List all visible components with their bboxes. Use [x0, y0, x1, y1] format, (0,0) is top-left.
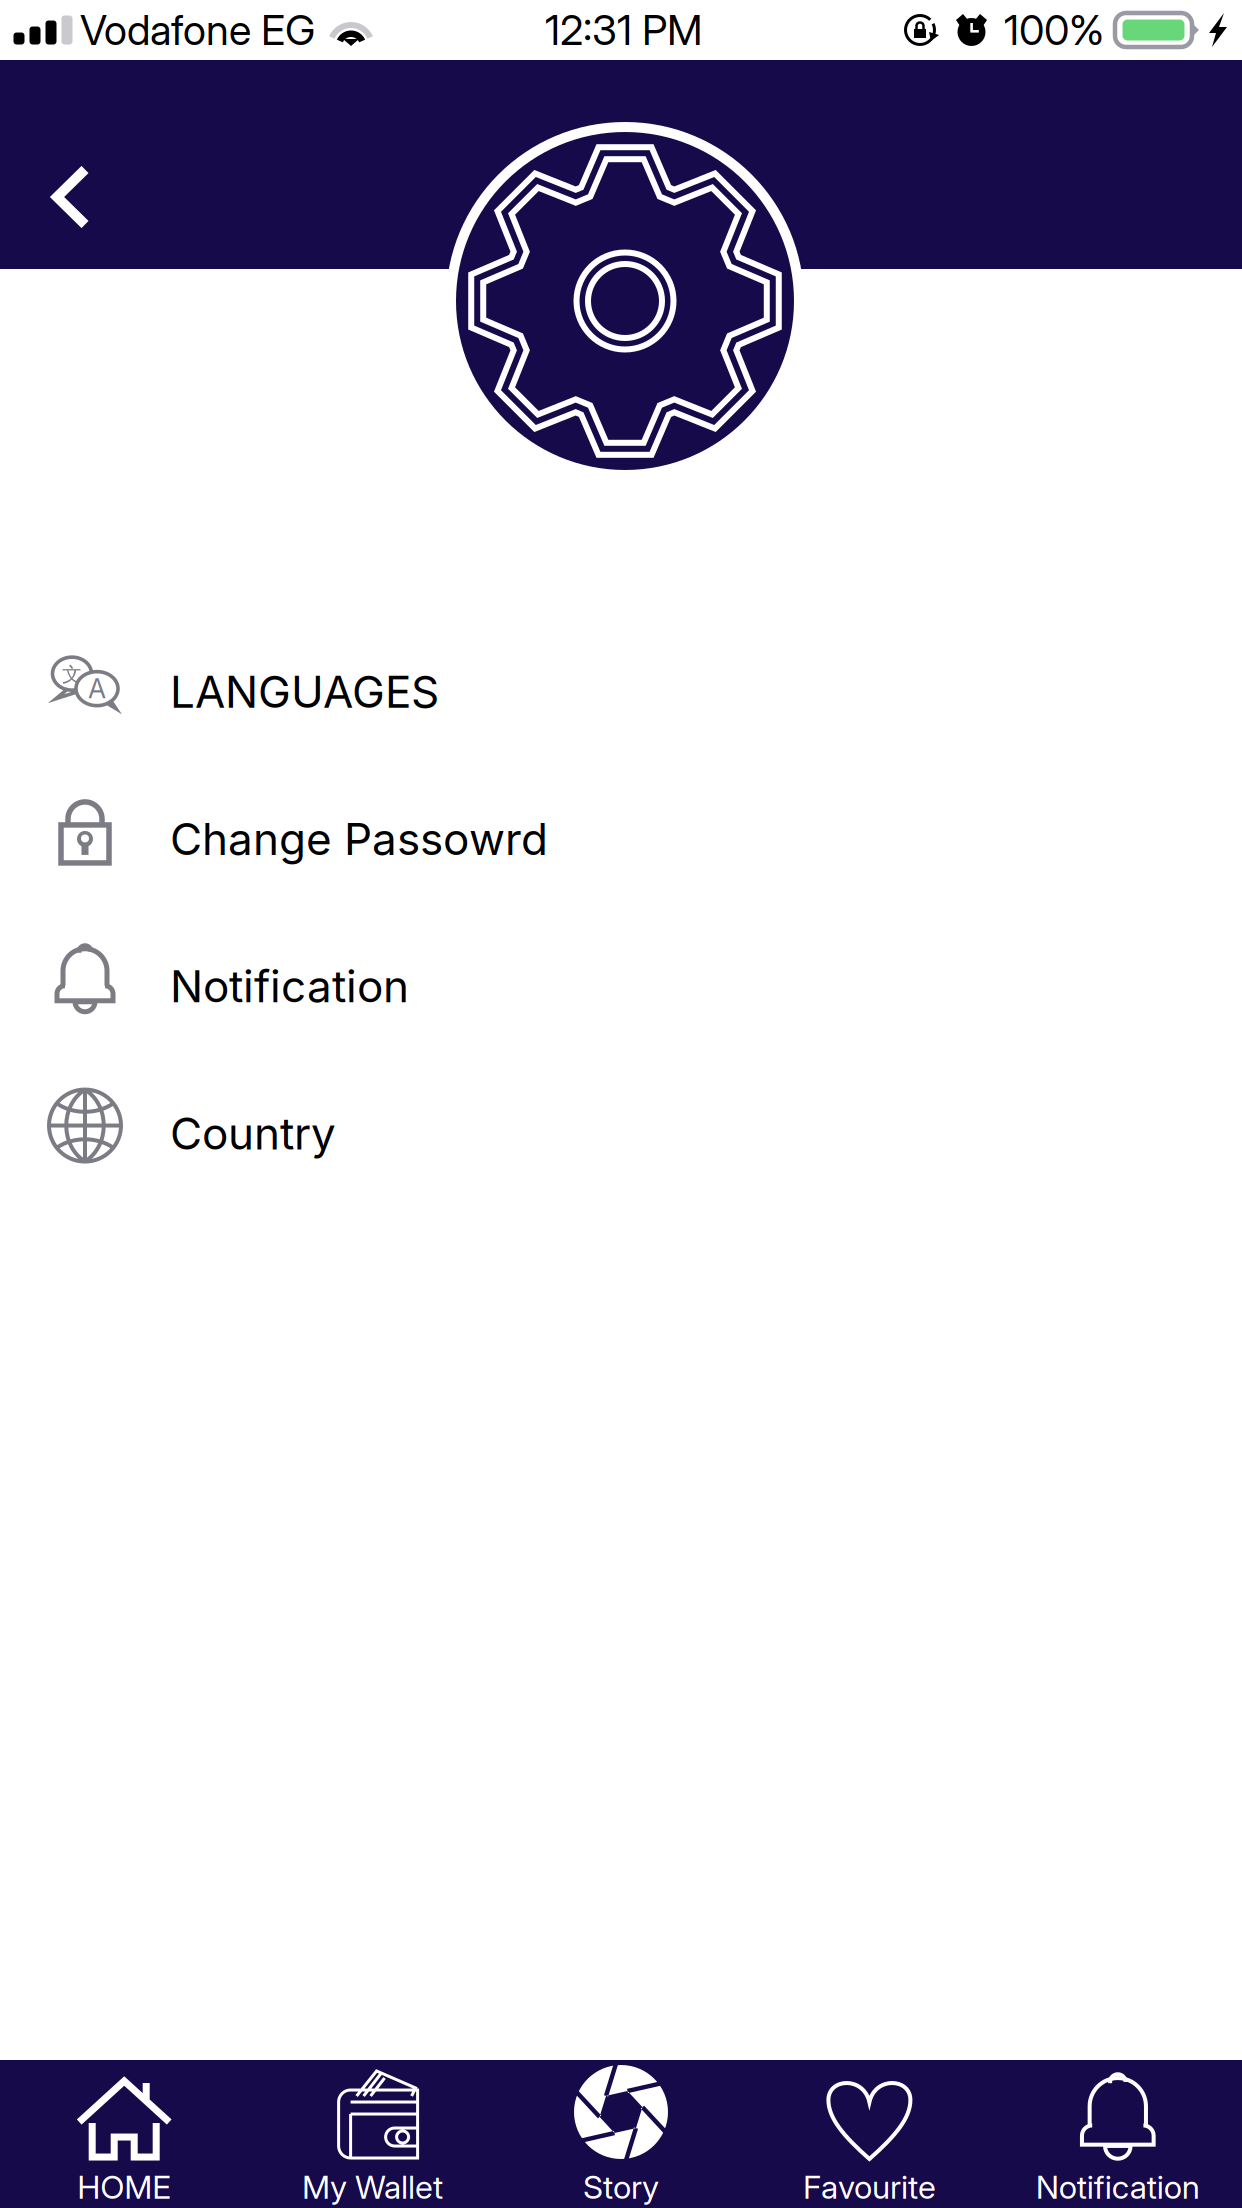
button[interactable]: My Wallet	[248, 2060, 497, 2208]
staticText: 文	[62, 662, 82, 687]
staticText: A	[88, 672, 106, 705]
staticText: Story	[583, 2168, 659, 2206]
staticText: Notification	[170, 960, 409, 1013]
staticText: HOME	[77, 2168, 171, 2206]
button[interactable]: HOME	[0, 2060, 248, 2208]
button[interactable]: Favourite	[745, 2060, 994, 2208]
staticText: LANGUAGES	[170, 665, 439, 718]
button[interactable]: Notification	[0, 913, 1242, 1060]
staticText: Notification	[1036, 2168, 1200, 2206]
button[interactable]: Back	[6, 132, 136, 262]
staticText: 12:31 PM	[545, 5, 703, 55]
staticText: Favourite	[803, 2168, 936, 2206]
staticText: Country	[170, 1107, 336, 1160]
button[interactable]: Notification	[994, 2060, 1242, 2208]
button[interactable]: Story	[497, 2060, 745, 2208]
button[interactable]: Change Passowrd	[0, 765, 1242, 913]
button[interactable]: Country	[0, 1060, 1242, 1207]
staticText: My Wallet	[302, 2168, 443, 2206]
button[interactable]: 文	[0, 618, 1242, 765]
staticText: Change Passowrd	[170, 812, 548, 865]
staticText: 100%	[1004, 5, 1104, 55]
staticText: Vodafone EG	[80, 5, 315, 55]
